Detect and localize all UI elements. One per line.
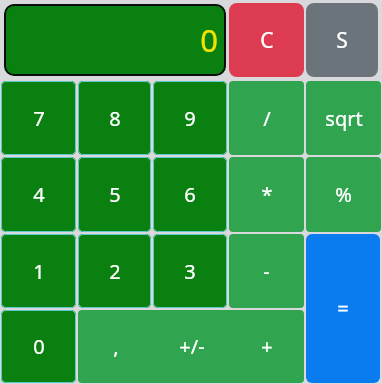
staticText: 7 [33,105,45,132]
staticText: sqrt [325,105,363,132]
staticText: 6 [184,181,196,208]
button[interactable]: % [306,157,381,232]
staticText: +/- [179,333,205,360]
button[interactable]: 5 [78,157,151,232]
button[interactable]: 8 [78,81,151,155]
staticText: % [335,181,352,208]
button[interactable]: - [229,234,304,308]
staticText: + [261,333,273,360]
button[interactable]: = [306,234,380,383]
staticText: 8 [109,105,121,132]
staticText: = [337,295,349,322]
button[interactable]: S [306,3,378,77]
staticText: 1 [33,258,45,285]
button[interactable]: 1 [1,234,76,308]
staticText: 3 [184,258,196,285]
staticText: , [113,333,119,360]
staticText: * [261,181,273,208]
staticText: 0 [200,19,218,61]
staticText: 2 [109,258,121,285]
button[interactable]: 7 [1,81,76,155]
button[interactable]: 0 [1,310,76,383]
button[interactable]: Display, 0 [4,4,226,76]
button[interactable]: 2 [78,234,151,308]
staticText: 4 [33,181,45,208]
button[interactable]: , [78,310,304,383]
button[interactable]: C [229,3,304,77]
staticText: 0 [33,333,45,360]
button[interactable]: 3 [153,234,227,308]
button[interactable]: / [229,81,304,155]
staticText: C [260,26,274,55]
button[interactable]: * [229,157,304,232]
button[interactable]: sqrt [306,81,381,155]
staticText: / [263,105,271,132]
button[interactable]: 4 [1,157,76,232]
button[interactable]: 6 [153,157,227,232]
staticText: 5 [109,181,121,208]
button[interactable]: 9 [153,81,227,155]
staticText: S [336,26,348,55]
staticText: 9 [184,105,196,132]
staticText: - [263,258,270,285]
